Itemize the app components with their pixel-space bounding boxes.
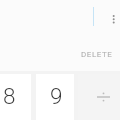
button[interactable]: 8 [0,74,31,120]
staticText: 9 [50,83,63,109]
button[interactable]: 9 [34,74,78,120]
staticText: DELETE [81,50,113,59]
staticText: 8 [3,83,16,109]
button[interactable]: Divide [78,74,120,120]
button[interactable]: More options [106,9,120,30]
button[interactable]: DELETE [79,46,115,62]
